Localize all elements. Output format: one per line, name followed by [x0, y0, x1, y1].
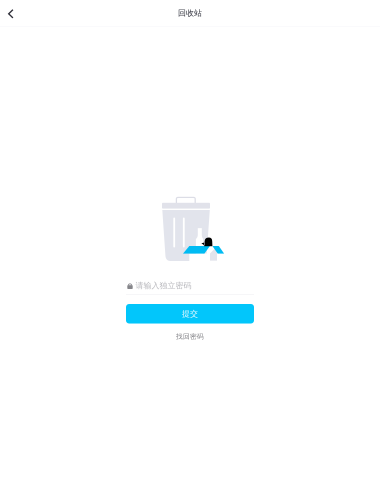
staticText: 找回密码: [176, 332, 204, 341]
button[interactable]: Back: [0, 1, 22, 25]
staticText: 回收站: [178, 8, 202, 18]
button[interactable]: 找回密码: [176, 331, 204, 341]
button[interactable]: 提交: [126, 304, 254, 323]
staticText: 请输入独立密码: [135, 281, 191, 290]
staticText: 提交: [182, 309, 198, 319]
